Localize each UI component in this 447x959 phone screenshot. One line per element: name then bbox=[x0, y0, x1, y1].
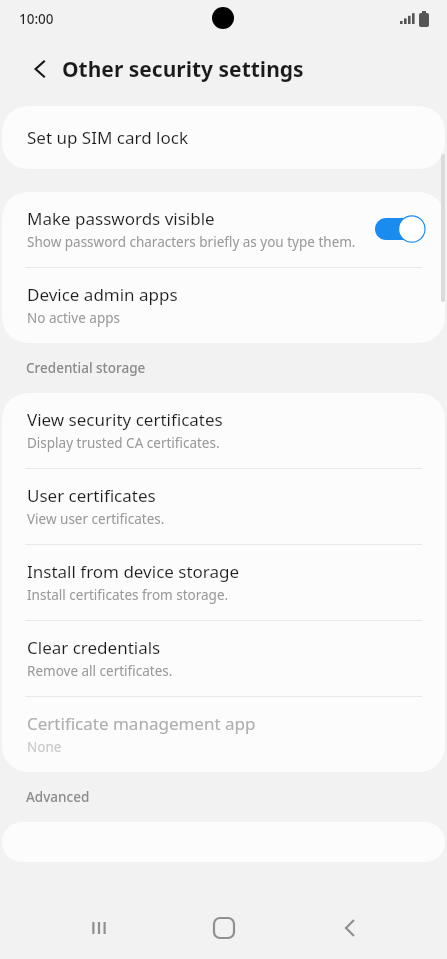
staticText: Remove all certificates. bbox=[27, 662, 173, 680]
staticText: Make passwords visible bbox=[27, 207, 215, 230]
button[interactable]: Make passwords visible bbox=[2, 192, 445, 267]
staticText: 10:00 bbox=[19, 10, 54, 28]
staticText: Show password characters briefly as you … bbox=[27, 233, 356, 251]
staticText: No active apps bbox=[27, 309, 120, 327]
staticText: Install certificates from storage. bbox=[27, 586, 229, 604]
staticText: None bbox=[27, 738, 62, 756]
button[interactable]: Certificate management app bbox=[2, 697, 445, 772]
button[interactable]: Home bbox=[201, 905, 247, 951]
button[interactable]: Back bbox=[327, 905, 373, 951]
button[interactable]: Clear credentials bbox=[2, 621, 445, 696]
staticText: Credential storage bbox=[26, 359, 146, 377]
button[interactable]: View security certificates bbox=[2, 393, 445, 468]
button[interactable]: Set up SIM card lock bbox=[2, 106, 445, 169]
staticText: View security certificates bbox=[27, 408, 223, 431]
staticText: Other security settings bbox=[62, 55, 304, 84]
button[interactable]: Make passwords visible toggle bbox=[375, 214, 427, 244]
staticText: Certificate management app bbox=[27, 712, 256, 735]
staticText: View user certificates. bbox=[27, 510, 165, 528]
button[interactable]: User certificates bbox=[2, 469, 445, 544]
staticText: Display trusted CA certificates. bbox=[27, 434, 220, 452]
button[interactable]: Recents bbox=[76, 905, 122, 951]
staticText: Clear credentials bbox=[27, 636, 161, 659]
staticText: Device admin apps bbox=[27, 283, 178, 306]
staticText: Set up SIM card lock bbox=[27, 126, 188, 149]
button[interactable]: Device admin apps bbox=[2, 268, 445, 343]
staticText: Install from device storage bbox=[27, 560, 240, 583]
button[interactable]: Install from device storage bbox=[2, 545, 445, 620]
staticText: Advanced bbox=[26, 788, 90, 806]
button[interactable]: Back bbox=[18, 47, 62, 91]
staticText: User certificates bbox=[27, 484, 156, 507]
